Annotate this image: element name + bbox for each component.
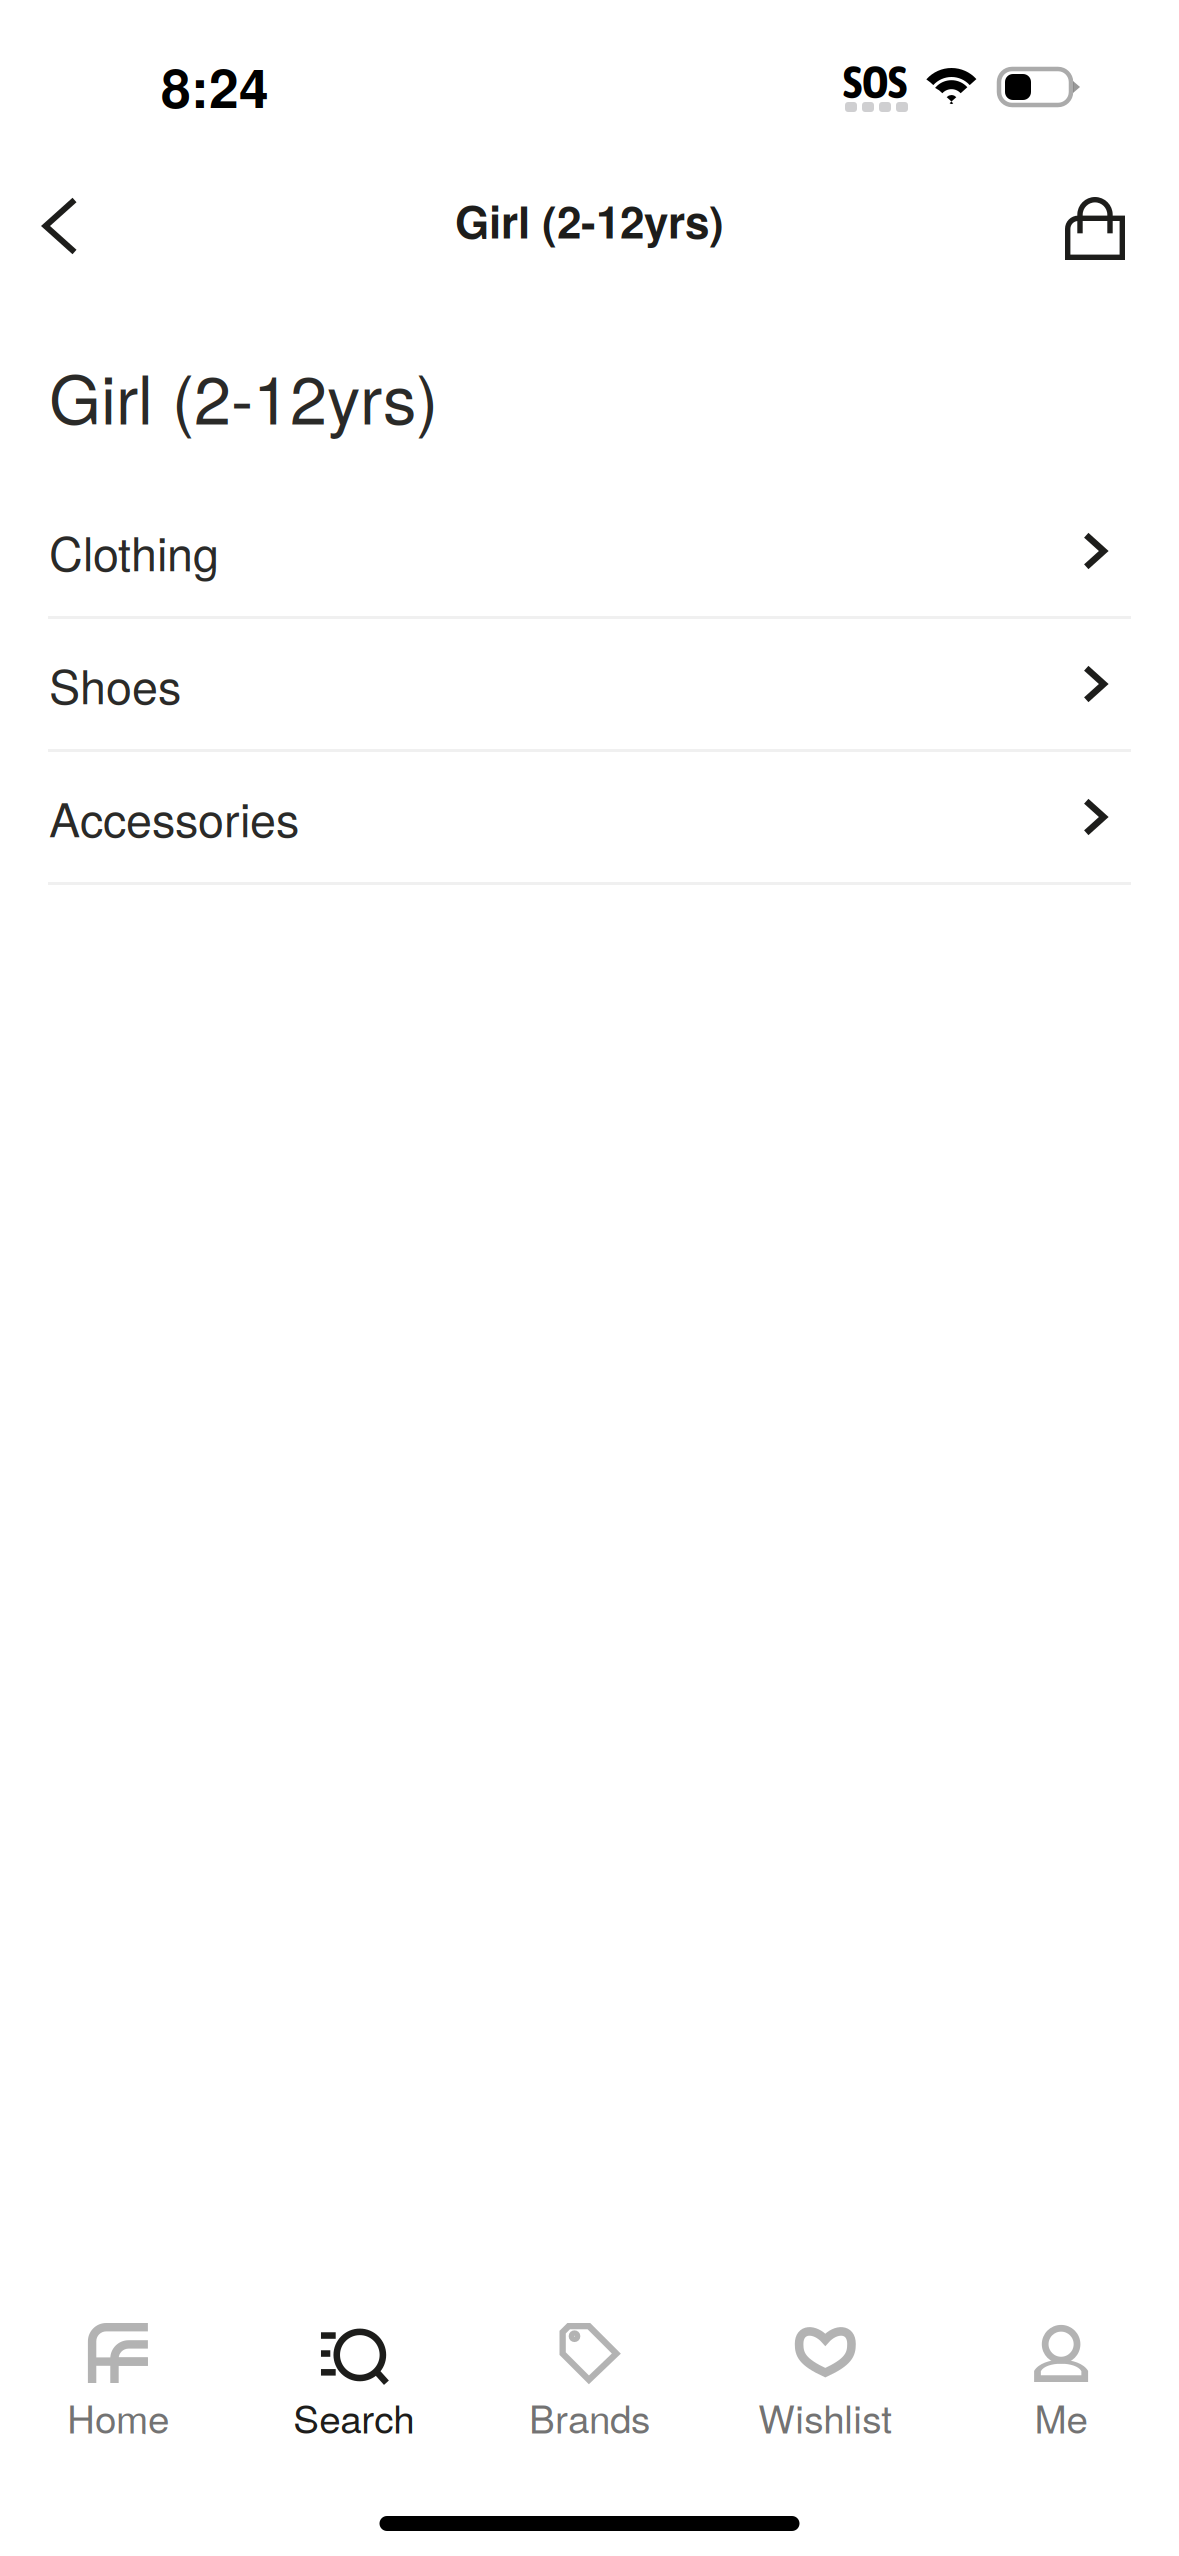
button[interactable]: Me: [943, 2316, 1179, 2446]
staticText: Brands: [529, 2389, 650, 2444]
staticText: SOS: [843, 56, 907, 108]
staticText: Search: [293, 2389, 414, 2444]
staticText: Me: [1035, 2389, 1088, 2444]
button[interactable]: Home: [0, 2316, 236, 2446]
button[interactable]: Search: [236, 2316, 472, 2446]
staticText: Girl (2-12yrs): [455, 189, 724, 252]
button[interactable]: Back: [8, 174, 112, 278]
staticText: Accessories: [49, 784, 299, 850]
staticText: Shoes: [49, 651, 181, 717]
button[interactable]: Wishlist: [707, 2316, 943, 2446]
button[interactable]: Accessories: [0, 752, 1179, 885]
button[interactable]: Clothing: [0, 486, 1179, 619]
staticText: Home: [67, 2389, 169, 2444]
staticText: Wishlist: [758, 2389, 892, 2444]
button[interactable]: Shopping bag: [1043, 178, 1147, 282]
staticText: 8:24: [161, 48, 269, 124]
button[interactable]: Brands: [472, 2316, 707, 2446]
staticText: Clothing: [49, 518, 219, 584]
staticText: Girl (2-12yrs): [49, 348, 438, 443]
button[interactable]: Shoes: [0, 619, 1179, 752]
